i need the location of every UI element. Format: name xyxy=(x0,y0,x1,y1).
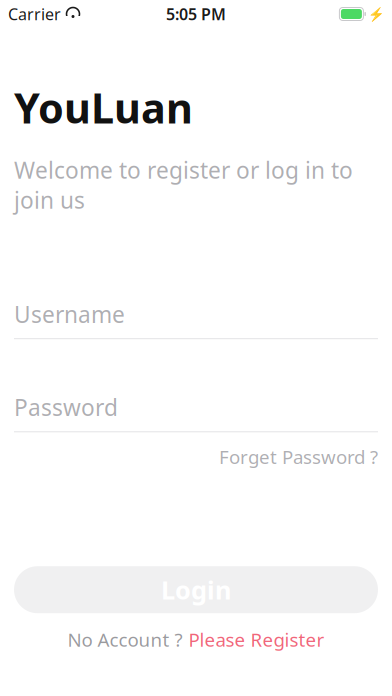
staticText: Please Register xyxy=(188,627,324,652)
button[interactable]: Forget Password ? xyxy=(219,440,378,473)
staticText: 5:05 PM xyxy=(166,3,226,25)
staticText: Password xyxy=(14,392,118,422)
staticText: Carrier xyxy=(8,3,61,25)
staticText: Welcome to register or log in to join us xyxy=(14,155,353,215)
staticText: YouLuan xyxy=(14,80,193,135)
staticText: ⚡ xyxy=(368,6,385,22)
staticText: No Account ? xyxy=(67,627,182,652)
staticText: Login xyxy=(161,573,231,606)
staticText: Forget Password ? xyxy=(219,444,378,469)
button[interactable]: Please Register xyxy=(182,627,324,652)
button[interactable]: Login xyxy=(14,566,378,613)
staticText: Username xyxy=(14,299,125,329)
